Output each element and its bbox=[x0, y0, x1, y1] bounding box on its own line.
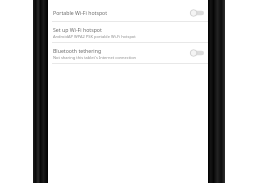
button[interactable]: Toggle bbox=[190, 48, 204, 58]
staticText: AndroidAP WPA2 PSK portable Wi-Fi hotspo… bbox=[53, 34, 136, 39]
button[interactable]: Toggle bbox=[190, 8, 204, 18]
button[interactable]: Bluetooth tethering bbox=[48, 43, 208, 63]
staticText: Bluetooth tethering bbox=[53, 47, 102, 54]
staticText: Not sharing this tablet's Internet conne… bbox=[53, 55, 137, 60]
staticText: Set up Wi-Fi hotspot bbox=[53, 26, 102, 33]
staticText: Portable Wi-Fi hotspot bbox=[53, 9, 108, 16]
button[interactable]: Portable Wi-Fi hotspot bbox=[48, 4, 208, 21]
button[interactable]: Set up Wi-Fi hotspot bbox=[48, 22, 208, 42]
